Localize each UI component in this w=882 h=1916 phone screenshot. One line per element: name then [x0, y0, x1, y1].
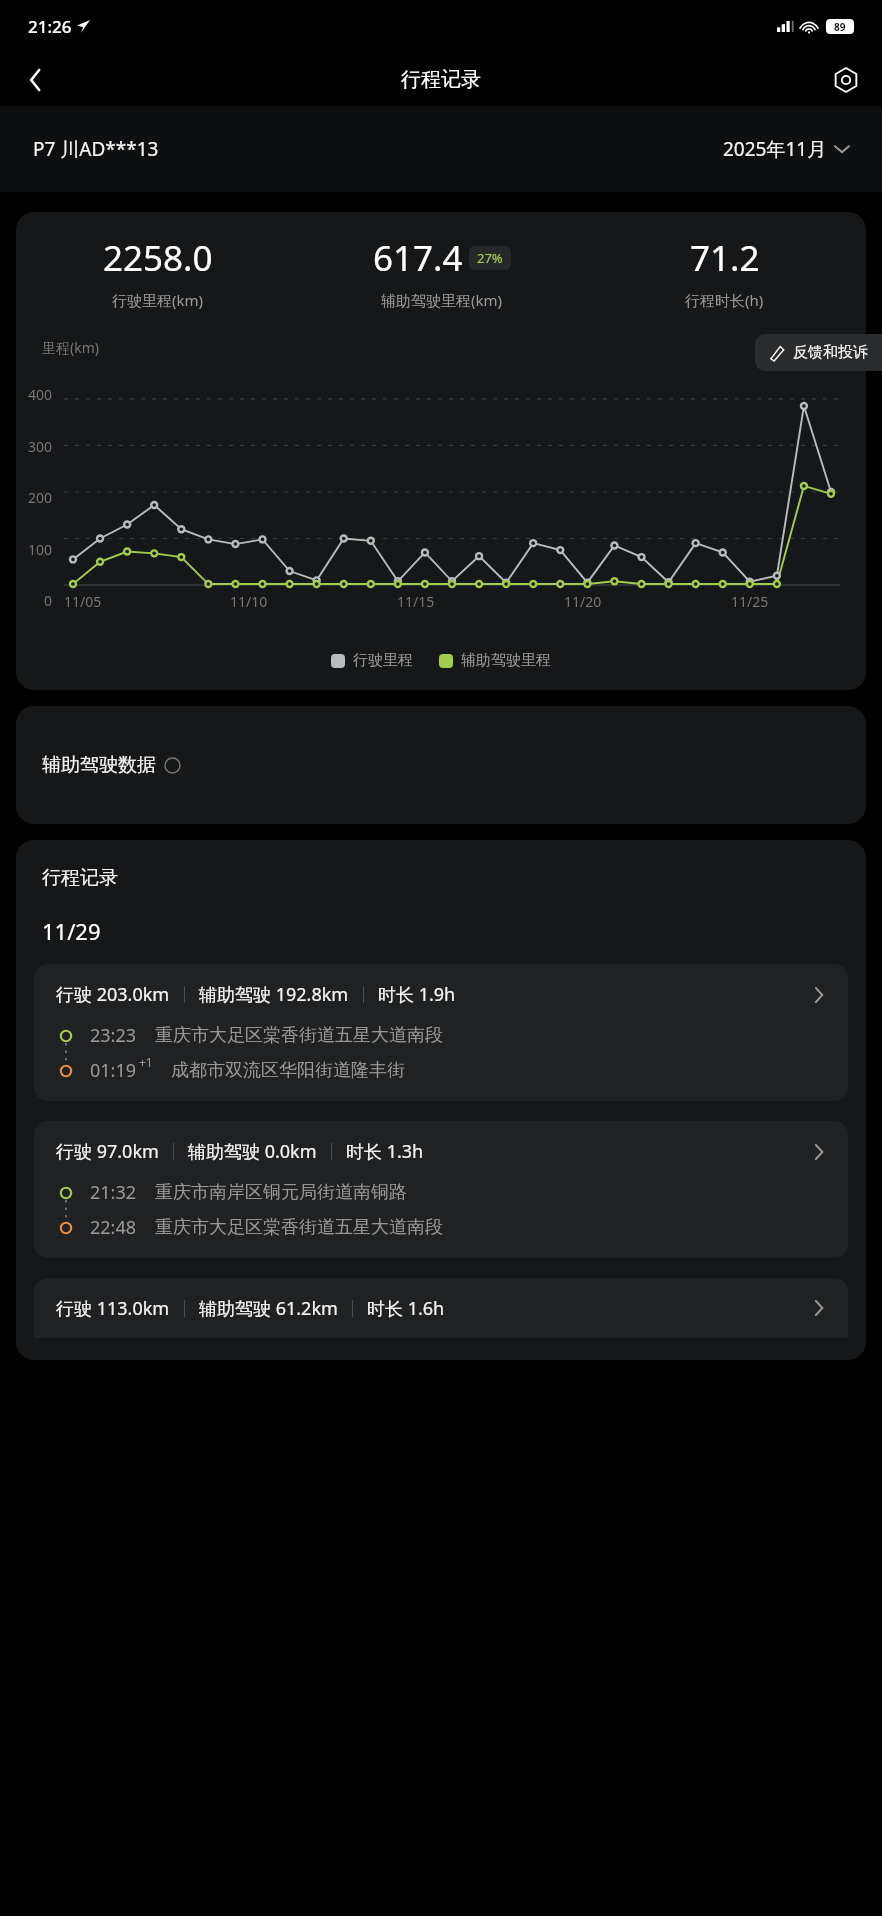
staticText: 重庆市大足区棠香街道五星大道南段: [155, 1216, 443, 1239]
staticText: 成都市双流区华阳街道隆丰街: [171, 1059, 405, 1082]
staticText: 时长 1.3h: [346, 1139, 424, 1164]
staticText: 重庆市南岸区铜元局街道南铜路: [155, 1181, 407, 1204]
button[interactable]: 辅助驾驶数据: [16, 706, 866, 824]
staticText: P7 川AD***13: [33, 136, 159, 162]
staticText: 辅助驾驶里程: [461, 651, 551, 670]
staticText: 行驶里程: [353, 651, 413, 670]
staticText: 反馈和投诉: [793, 343, 868, 362]
staticText: 辅助驾驶数据: [42, 753, 156, 777]
staticText: 11/29: [42, 916, 101, 946]
staticText: 200: [16, 488, 52, 507]
staticText: 89: [834, 20, 846, 34]
staticText: 里程(km): [42, 338, 99, 357]
staticText: 时长 1.9h: [378, 982, 456, 1007]
staticText: 617.4: [373, 234, 463, 282]
staticText: 22:48: [90, 1215, 137, 1240]
staticText: 2258.0: [103, 234, 213, 282]
staticText: 时长 1.6h: [367, 1296, 445, 1320]
button[interactable]: 行驶 97.0km: [34, 1121, 848, 1258]
staticText: 21:26: [28, 15, 72, 38]
staticText: 300: [16, 437, 52, 456]
staticText: 行驶里程(km): [112, 290, 204, 310]
staticText: 27%: [477, 249, 503, 267]
staticText: 11/25: [731, 592, 769, 611]
button[interactable]: 2025年11月: [723, 136, 849, 162]
staticText: 辅助驾驶 192.8km: [199, 982, 349, 1007]
staticText: 11/10: [230, 592, 268, 611]
staticText: +1: [139, 1054, 153, 1070]
staticText: 重庆市大足区棠香街道五星大道南段: [155, 1024, 443, 1047]
staticText: 行驶 203.0km: [56, 982, 170, 1007]
staticText: 辅助驾驶 61.2km: [199, 1296, 338, 1320]
staticText: 行程记录: [42, 866, 118, 890]
staticText: 100: [16, 540, 52, 559]
staticText: 11/05: [64, 592, 102, 611]
staticText: 行程时长(h): [685, 290, 764, 310]
staticText: 21:32: [90, 1180, 137, 1205]
button[interactable]: Back: [12, 56, 60, 104]
staticText: 400: [16, 385, 52, 404]
staticText: 辅助驾驶里程(km): [381, 290, 503, 310]
staticText: 行驶 97.0km: [56, 1139, 159, 1164]
staticText: 行驶 113.0km: [56, 1296, 170, 1320]
button[interactable]: 行驶 203.0km: [34, 964, 848, 1101]
staticText: 71.2: [690, 234, 760, 282]
staticText: 0: [16, 591, 52, 610]
staticText: 11/20: [564, 592, 602, 611]
button[interactable]: 行驶 113.0km: [34, 1278, 848, 1338]
staticText: 23:23: [90, 1023, 137, 1048]
staticText: 辅助驾驶 0.0km: [188, 1139, 317, 1164]
button[interactable]: 反馈和投诉: [755, 334, 882, 371]
staticText: 2025年11月: [723, 136, 827, 162]
staticText: 行程记录: [401, 67, 481, 92]
button[interactable]: Settings: [822, 56, 870, 104]
staticText: 01:19: [90, 1058, 137, 1083]
staticText: 11/15: [397, 592, 435, 611]
